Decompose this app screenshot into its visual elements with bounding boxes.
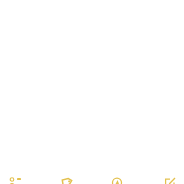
button[interactable]: Compose [165, 177, 175, 184]
button[interactable] [7, 177, 21, 184]
button[interactable]: Explore [112, 177, 122, 184]
button[interactable]: Offers [61, 177, 71, 184]
